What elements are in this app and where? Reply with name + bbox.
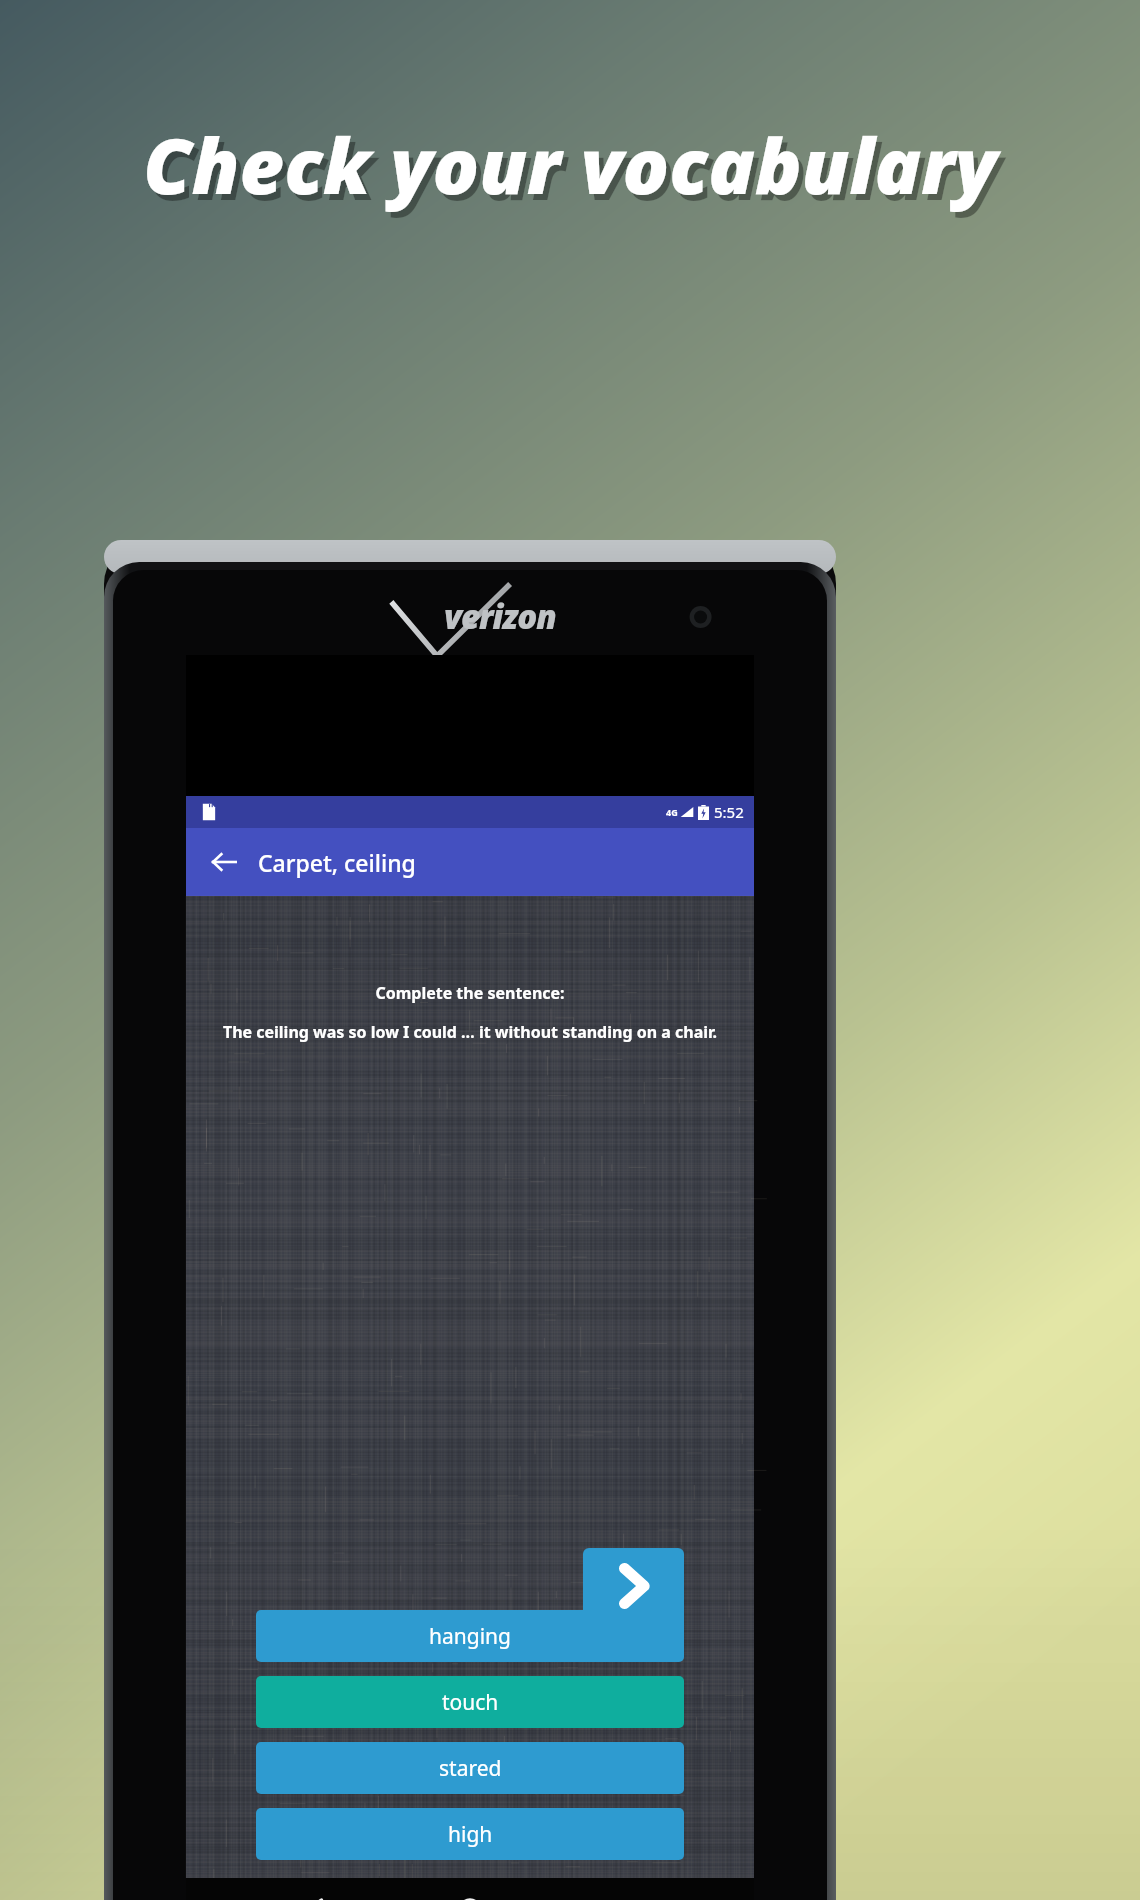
button[interactable]: stared <box>256 1742 684 1794</box>
staticText: hanging <box>429 1622 511 1651</box>
staticText: 4G <box>666 806 678 818</box>
staticText: Check your vocabulary <box>143 112 997 217</box>
staticText: stared <box>439 1754 502 1783</box>
staticText: Complete the sentence: <box>186 982 754 1004</box>
button[interactable]: hanging <box>256 1610 684 1662</box>
button[interactable]: Home <box>442 1881 498 1900</box>
staticText: 5:52 <box>714 802 744 822</box>
button[interactable]: Next question <box>583 1548 684 1623</box>
staticText: verizon <box>444 594 556 639</box>
button[interactable]: Back <box>200 838 248 886</box>
staticText: high <box>448 1820 493 1849</box>
staticText: The ceiling was so low I could … it with… <box>196 1021 744 1043</box>
staticText: touch <box>442 1688 499 1717</box>
button[interactable]: touch <box>256 1676 684 1728</box>
button[interactable]: Back <box>286 1881 342 1900</box>
staticText: Check your vocabulary <box>148 118 1002 223</box>
button[interactable]: high <box>256 1808 684 1860</box>
staticText: Carpet, ceiling <box>258 847 416 878</box>
